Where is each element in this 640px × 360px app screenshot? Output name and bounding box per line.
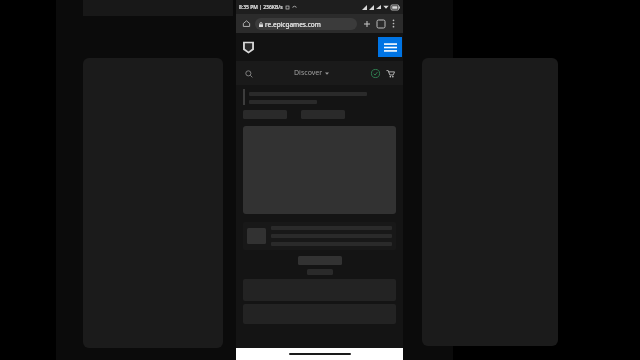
button[interactable]: Cart bbox=[384, 67, 397, 80]
button[interactable]: re.epicgames.com bbox=[255, 18, 357, 30]
button[interactable]: Downloads bbox=[369, 67, 382, 80]
staticText: 8:35 PM | 236KB/s bbox=[239, 4, 283, 11]
button[interactable]: Home bbox=[240, 17, 253, 30]
button[interactable]: Epic Games bbox=[240, 39, 256, 55]
button[interactable]: Tabs bbox=[374, 17, 387, 30]
button[interactable]: Menu bbox=[378, 37, 402, 57]
button[interactable]: New tab bbox=[360, 17, 373, 30]
button[interactable]: Discover bbox=[294, 68, 329, 78]
staticText: re.epicgames.com bbox=[265, 20, 321, 29]
button[interactable]: Search bbox=[242, 67, 255, 80]
button[interactable]: More options bbox=[388, 18, 399, 29]
staticText: Discover bbox=[294, 68, 323, 78]
button[interactable] bbox=[243, 222, 396, 250]
